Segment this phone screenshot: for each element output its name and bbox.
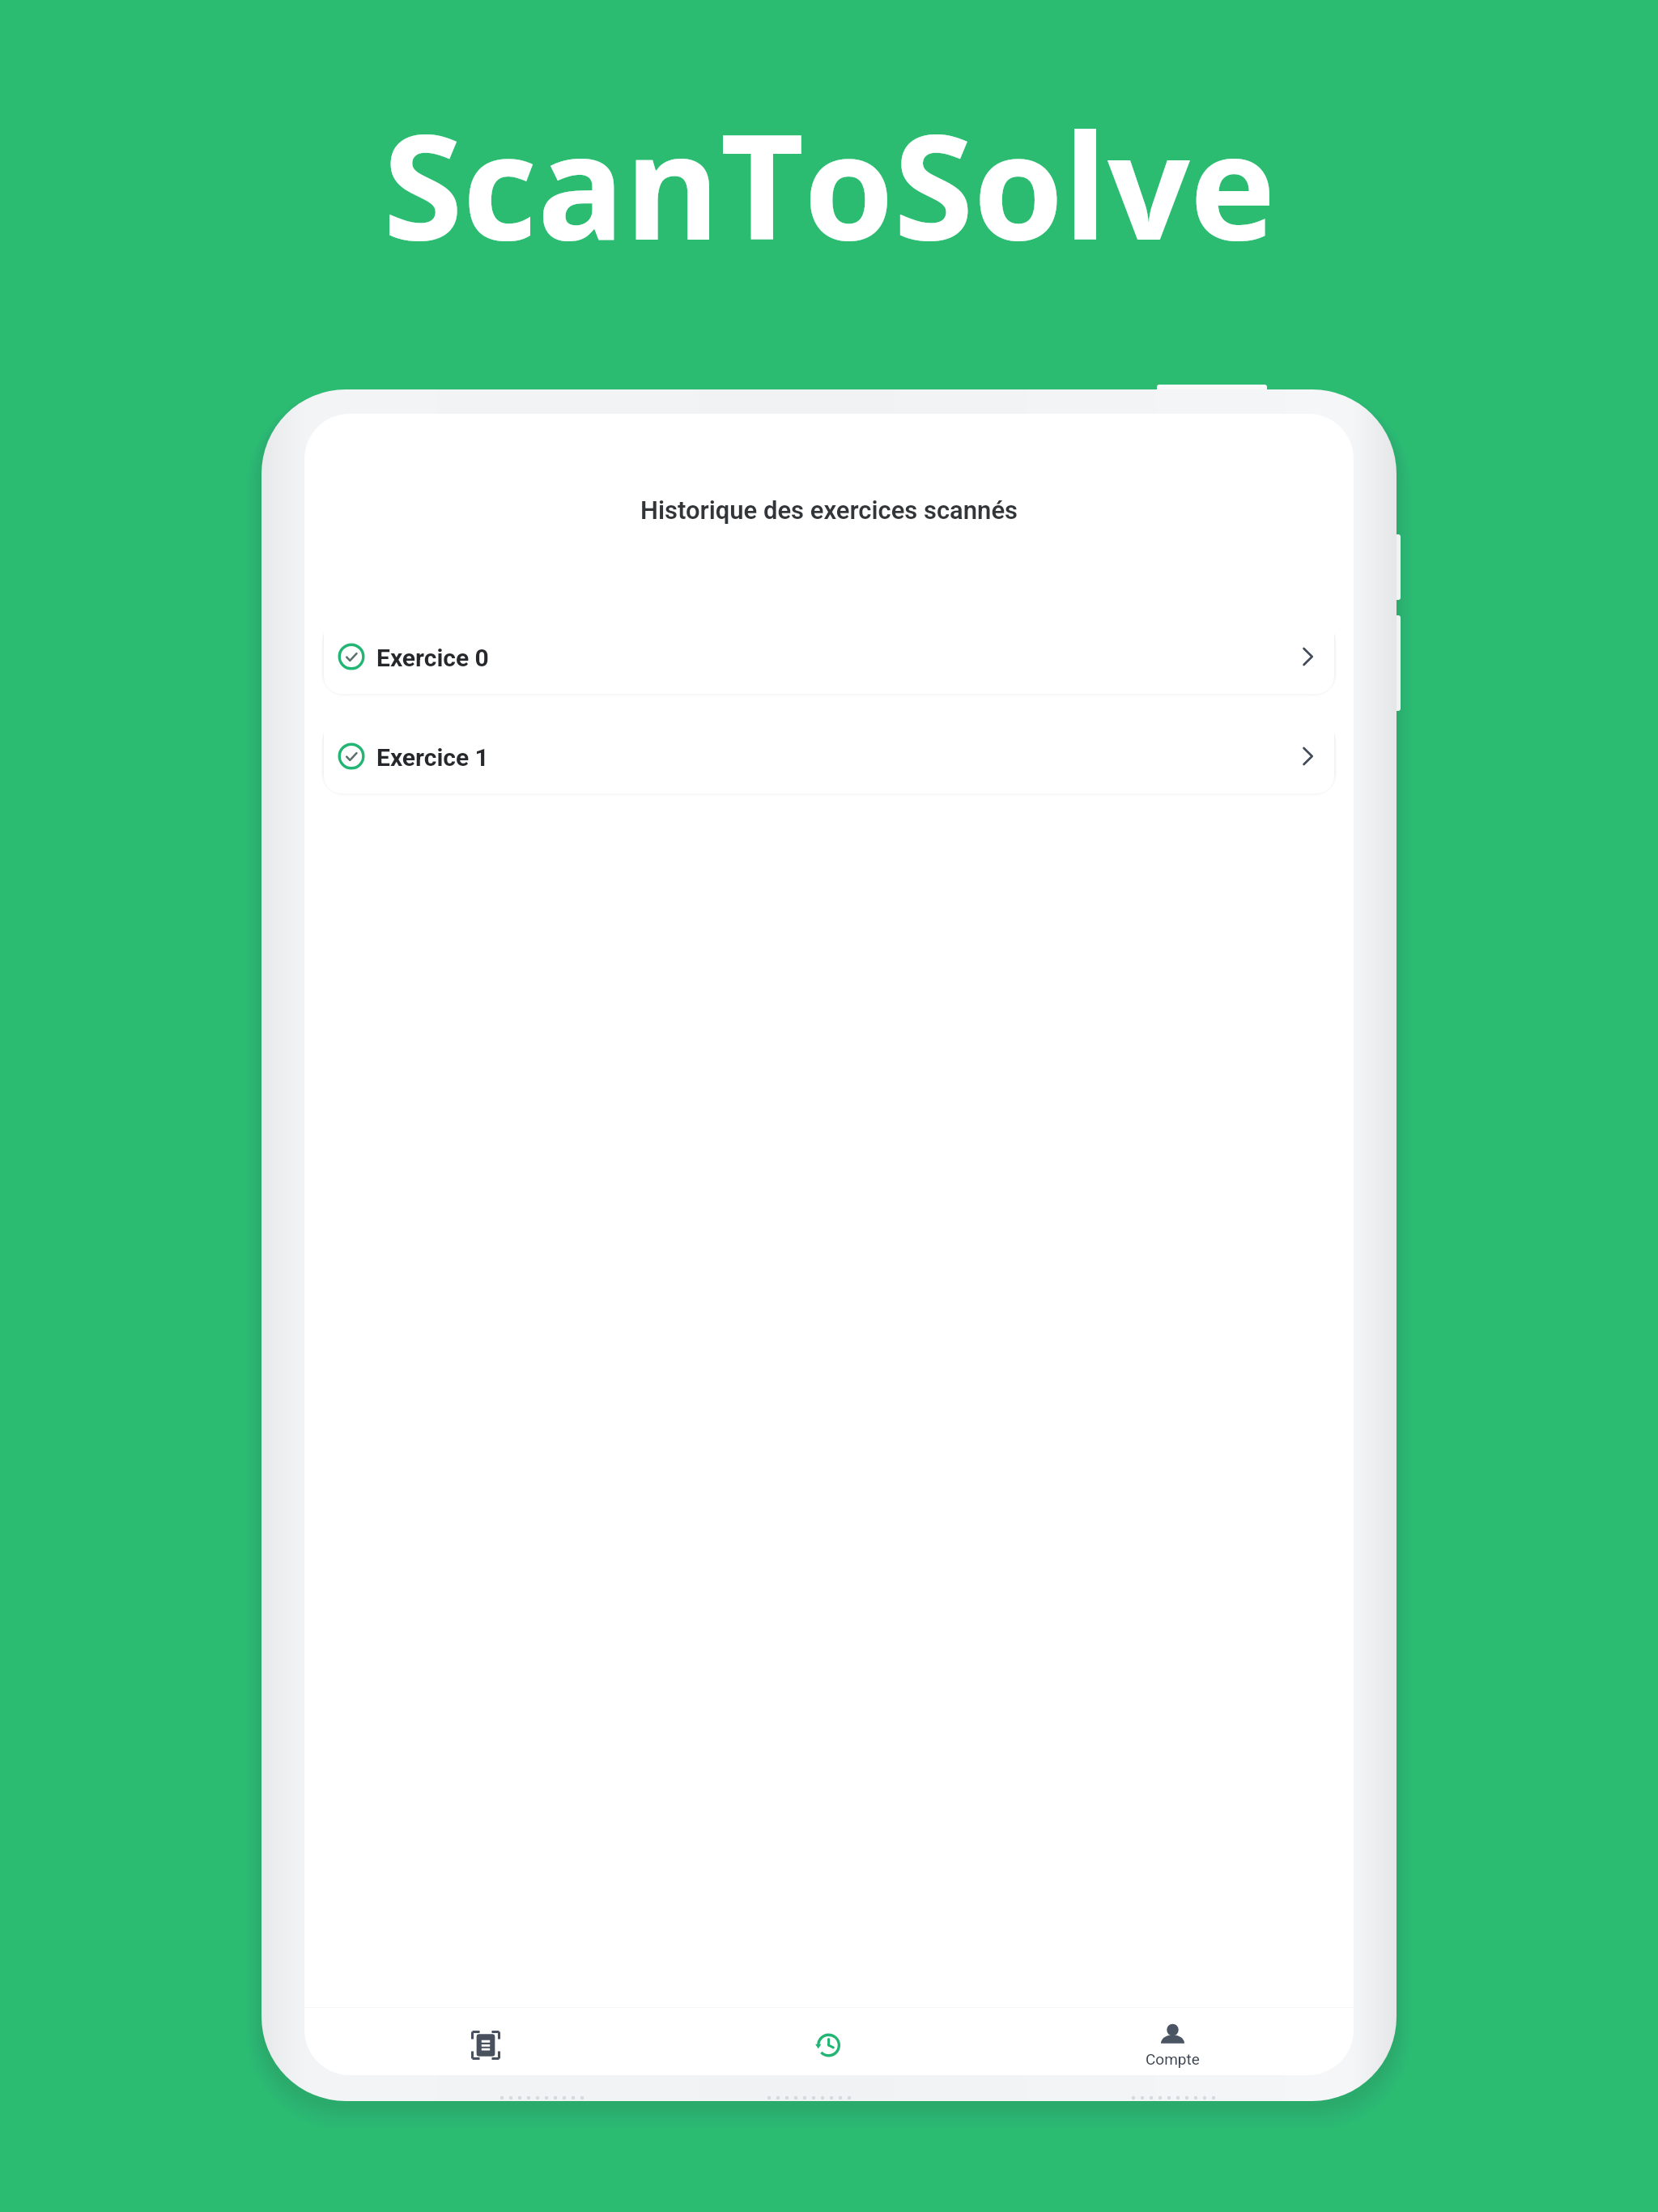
staticText: Compte [1146, 2050, 1200, 2068]
staticText: Exercice 1 [376, 743, 489, 772]
staticText: Historique des exercices scannés [640, 496, 1018, 525]
button[interactable]: Scanner un exercice [314, 2014, 657, 2075]
staticText: ScanToSolve [383, 85, 1276, 283]
button[interactable]: Historique [657, 2014, 1001, 2075]
button[interactable]: Exercice 0 [324, 615, 1334, 694]
button[interactable]: Compte [1001, 2014, 1344, 2075]
button[interactable]: Exercice 1 [324, 715, 1334, 793]
staticText: Exercice 0 [376, 644, 489, 672]
